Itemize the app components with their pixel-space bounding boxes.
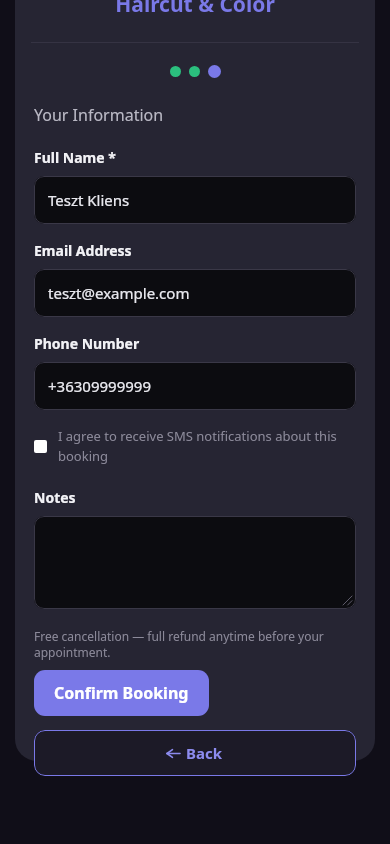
staticText: I agree to receive SMS notifications abo… — [58, 427, 356, 465]
button[interactable]: Agree to SMS notifications — [34, 427, 356, 465]
staticText: Haircut & Color — [115, 0, 275, 12]
button[interactable]: Teszt Kliens — [34, 176, 356, 224]
staticText: Your Information — [34, 104, 164, 126]
staticText: Email Address — [34, 241, 132, 260]
other: Agree to SMS notifications — [34, 440, 47, 453]
staticText: Back — [186, 743, 223, 763]
button[interactable]: Back — [34, 730, 356, 776]
button[interactable]: +36309999999 — [34, 362, 356, 410]
button[interactable]: Confirm Booking — [34, 670, 209, 716]
staticText: Confirm Booking — [54, 682, 189, 704]
staticText: teszt@example.com — [48, 283, 190, 303]
button[interactable] — [34, 516, 356, 609]
staticText: Teszt Kliens — [48, 190, 130, 210]
staticText: Full Name * — [34, 148, 116, 167]
staticText: Notes — [34, 488, 76, 507]
staticText: +36309999999 — [48, 376, 151, 396]
staticText: Free cancellation — full refund anytime … — [34, 628, 356, 660]
staticText: Phone Number — [34, 334, 140, 353]
button[interactable]: teszt@example.com — [34, 269, 356, 317]
